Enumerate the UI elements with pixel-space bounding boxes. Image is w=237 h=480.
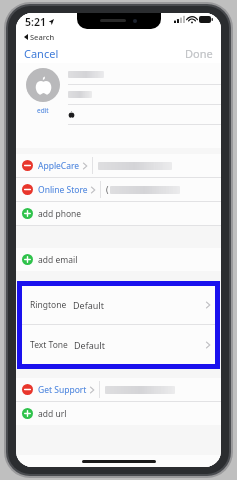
- staticText: Cancel: [24, 46, 59, 60]
- button[interactable]: Delete AppleCare: [16, 154, 221, 177]
- button[interactable]: add phone: [16, 202, 221, 225]
- button[interactable]: Cancel: [16, 43, 67, 63]
- button[interactable]: edit: [34, 105, 52, 116]
- staticText: Text Tone: [30, 339, 68, 351]
- staticText: 5:21: [25, 15, 46, 29]
- button[interactable]: [68, 85, 221, 104]
- staticText: add email: [38, 254, 78, 266]
- button[interactable]: Delete Get Support: [16, 378, 221, 401]
- button[interactable]: add url: [16, 402, 221, 425]
- staticText: Default: [73, 299, 104, 311]
- button[interactable]: Delete Get Support: [22, 384, 33, 395]
- staticText: Online Store: [38, 184, 88, 196]
- button[interactable]: Contact photo: [26, 68, 60, 102]
- button[interactable]: Search: [23, 32, 56, 42]
- staticText: (: [106, 184, 109, 196]
- button[interactable]: Done: [177, 43, 221, 63]
- staticText: Search: [30, 32, 55, 42]
- button[interactable]: add email: [16, 248, 221, 271]
- button[interactable]: Delete Online Store: [22, 184, 33, 195]
- button[interactable]: Ringtone: [22, 286, 215, 324]
- staticText: edit: [37, 106, 49, 115]
- staticText: Ringtone: [30, 299, 67, 311]
- button[interactable]: [68, 65, 221, 84]
- button[interactable]: Delete AppleCare: [22, 160, 33, 171]
- button[interactable]: [68, 105, 221, 124]
- staticText: Get Support: [38, 384, 87, 396]
- button[interactable]: Delete Online Store: [16, 178, 221, 201]
- button[interactable]: Text Tone: [22, 325, 215, 364]
- staticText: add phone: [38, 208, 82, 220]
- staticText: Default: [74, 339, 105, 351]
- staticText: add url: [38, 408, 67, 420]
- staticText: AppleCare: [38, 160, 80, 172]
- staticText: Done: [185, 46, 213, 60]
